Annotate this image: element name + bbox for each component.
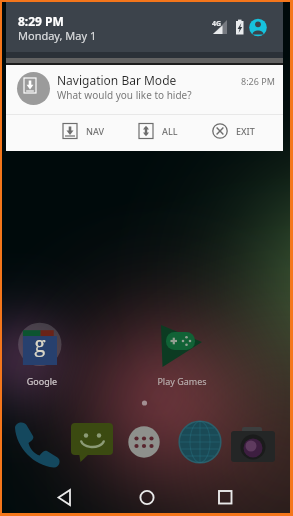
button[interactable]: Phone [12,420,62,466]
staticText: g [31,330,49,359]
staticText: Monday, May 1 [18,28,97,43]
button[interactable]: ALL [138,119,178,143]
button[interactable]: NAV [62,119,105,143]
button[interactable]: Camera [230,426,276,464]
staticText: 4G [212,19,222,29]
button[interactable]: Home [138,488,158,508]
staticText: ALL [162,125,178,137]
staticText: 8:29 PM [18,13,64,29]
staticText: Google [16,375,68,387]
staticText: What would you like to hide? [57,88,192,102]
button[interactable]: Google [18,322,66,370]
button[interactable]: Apps [128,426,162,460]
staticText: EXIT [236,125,255,137]
button[interactable]: Navigation Bar Mode [6,65,283,151]
staticText: Navigation Bar Mode [57,72,177,88]
staticText: 8:26 PM [241,75,275,87]
staticText: Play Games [154,375,210,387]
button[interactable]: EXIT [212,119,255,143]
button[interactable]: Browser [179,421,223,465]
button[interactable]: Messaging [71,423,115,463]
button[interactable]: Play Games [159,322,207,370]
staticText: NAV [86,125,105,137]
button[interactable]: Back [57,488,77,508]
button[interactable]: Recents [217,488,237,508]
